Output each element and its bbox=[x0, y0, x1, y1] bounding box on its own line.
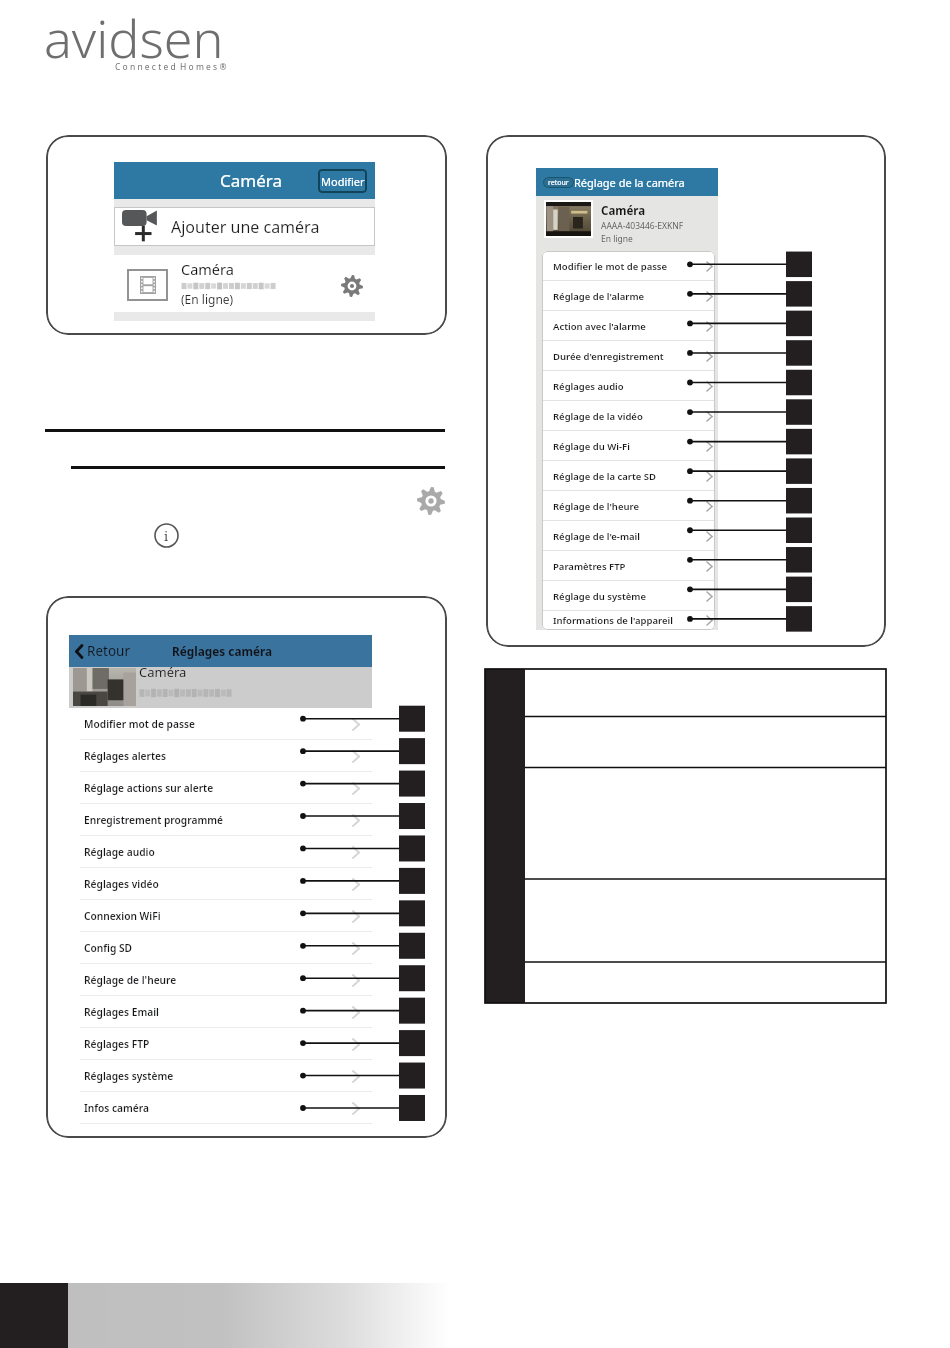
staticText: Retour bbox=[87, 642, 130, 660]
staticText: Réglages audio bbox=[553, 380, 624, 393]
staticText: Action avec l'alarme bbox=[553, 320, 646, 333]
staticText: Modifier mot de passe bbox=[84, 717, 195, 731]
button[interactable]: Infos caméra bbox=[69, 1092, 372, 1124]
button[interactable]: Réglage de la vidéo bbox=[542, 401, 715, 431]
staticText: Réglage de la caméra bbox=[574, 175, 685, 190]
button[interactable]: Durée d'enregistrement bbox=[542, 341, 715, 371]
button[interactable]: Informations de l'appareil bbox=[542, 611, 715, 630]
staticText: Caméra bbox=[181, 259, 234, 279]
staticText: Réglage actions sur alerte bbox=[84, 781, 214, 795]
staticText: Modifier bbox=[321, 174, 365, 189]
staticText: Réglage de l'heure bbox=[84, 973, 177, 987]
staticText: En ligne bbox=[601, 233, 633, 245]
staticText: Modifier le mot de passe bbox=[553, 260, 668, 273]
staticText: Réglage du Wi-Fi bbox=[553, 440, 630, 453]
button[interactable]: Enregistrement programmé bbox=[69, 804, 372, 836]
staticText: Réglage audio bbox=[84, 845, 155, 859]
button[interactable]: Réglages bbox=[417, 487, 445, 515]
staticText: Informations de l'appareil bbox=[553, 614, 673, 627]
button[interactable]: Paramètres FTP bbox=[542, 551, 715, 581]
button[interactable]: Réglages Email bbox=[69, 996, 372, 1028]
button[interactable]: Réglage du Wi-Fi bbox=[542, 431, 715, 461]
staticText: i bbox=[164, 527, 169, 545]
button[interactable]: Modifier mot de passe bbox=[69, 708, 372, 740]
button[interactable]: Réglages audio bbox=[542, 371, 715, 401]
button[interactable]: Réglage de l'heure bbox=[542, 491, 715, 521]
button[interactable]: Réglage actions sur alerte bbox=[69, 772, 372, 804]
staticText: Réglages Email bbox=[84, 1005, 159, 1019]
button[interactable]: Retour bbox=[75, 642, 130, 660]
staticText: Réglages caméra bbox=[172, 643, 273, 659]
staticText: Réglage de l'alarme bbox=[553, 290, 645, 303]
staticText: Connexion WiFi bbox=[84, 909, 161, 923]
staticText: Réglage de l'e-mail bbox=[553, 530, 640, 543]
button[interactable]: Config SD bbox=[69, 932, 372, 964]
staticText: Enregistrement programmé bbox=[84, 813, 223, 827]
button[interactable]: Réglage audio bbox=[69, 836, 372, 868]
staticText: Caméra bbox=[220, 169, 282, 192]
button[interactable]: retour bbox=[543, 177, 574, 188]
staticText: Ajouter une caméra bbox=[171, 216, 320, 238]
button[interactable]: Modifier bbox=[318, 169, 367, 193]
button[interactable]: Ajouter une caméra bbox=[114, 207, 375, 246]
staticText: retour bbox=[548, 178, 569, 188]
button[interactable]: Réglages système bbox=[69, 1060, 372, 1092]
button[interactable]: Réglages alertes bbox=[69, 740, 372, 772]
staticText: Config SD bbox=[84, 941, 133, 955]
staticText: avidsen bbox=[44, 2, 224, 73]
button[interactable]: Paramètres caméra bbox=[341, 275, 363, 297]
staticText: Caméra bbox=[139, 663, 187, 681]
staticText: AAAA-403446-EXKNF bbox=[601, 220, 684, 232]
staticText: Réglage du système bbox=[553, 590, 646, 603]
staticText: Réglages vidéo bbox=[84, 877, 159, 891]
button[interactable]: Modifier le mot de passe bbox=[542, 251, 715, 281]
staticText: Durée d'enregistrement bbox=[553, 350, 664, 363]
staticText: Réglages alertes bbox=[84, 749, 167, 763]
button[interactable]: Réglage de l'alarme bbox=[542, 281, 715, 311]
button[interactable]: Caméra bbox=[114, 255, 375, 312]
button[interactable]: Réglages vidéo bbox=[69, 868, 372, 900]
staticText: Réglages système bbox=[84, 1069, 174, 1083]
staticText: C o n n e c t e d H o m e s ® bbox=[115, 61, 227, 73]
staticText: Infos caméra bbox=[84, 1101, 149, 1115]
button[interactable]: Réglage de la carte SD bbox=[542, 461, 715, 491]
staticText: (En ligne) bbox=[181, 291, 234, 307]
staticText: Réglage de l'heure bbox=[553, 500, 640, 513]
staticText: Caméra bbox=[601, 203, 646, 219]
staticText: Réglages FTP bbox=[84, 1037, 150, 1051]
button[interactable]: Réglage de l'heure bbox=[69, 964, 372, 996]
button[interactable]: Connexion WiFi bbox=[69, 900, 372, 932]
button[interactable]: Information bbox=[154, 523, 179, 548]
button[interactable]: Réglages FTP bbox=[69, 1028, 372, 1060]
button[interactable]: Action avec l'alarme bbox=[542, 311, 715, 341]
staticText: Paramètres FTP bbox=[553, 560, 626, 573]
staticText: Réglage de la carte SD bbox=[553, 470, 657, 483]
button[interactable]: Réglage de l'e-mail bbox=[542, 521, 715, 551]
button[interactable]: Réglage du système bbox=[542, 581, 715, 611]
staticText: Réglage de la vidéo bbox=[553, 410, 643, 423]
